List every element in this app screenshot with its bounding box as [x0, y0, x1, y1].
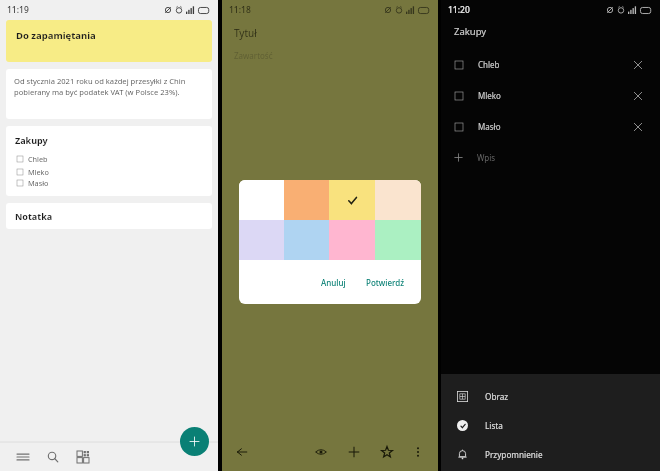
button[interactable]: Back [231, 441, 253, 463]
staticText: Masło [28, 178, 49, 188]
staticText: Chleb [478, 59, 500, 70]
staticText: Zakupy [15, 134, 48, 146]
staticText: Zawartość [234, 50, 273, 61]
staticText: Do zapamiętania [16, 29, 96, 42]
staticText: Lista [485, 420, 503, 431]
button[interactable]: Add [343, 441, 365, 463]
button[interactable]: Wpis [441, 142, 660, 173]
button[interactable]: Add [180, 427, 209, 456]
staticText: Masło [478, 121, 501, 132]
button[interactable]: Menu [12, 446, 34, 468]
button[interactable]: Search [42, 446, 64, 468]
button[interactable]: Lista [441, 411, 660, 440]
button[interactable]: Grid view [72, 446, 94, 468]
staticText: Zakupy [454, 25, 487, 38]
staticText: 11:18 [229, 4, 251, 16]
button[interactable]: Przypomnienie [441, 440, 660, 469]
button[interactable]: Remove Masło [630, 119, 646, 135]
staticText: Mleko [28, 167, 49, 177]
staticText: Notatka [15, 210, 53, 222]
button[interactable]: Remove Chleb [630, 57, 646, 73]
button[interactable]: More options [407, 441, 429, 463]
staticText: Mleko [478, 90, 501, 101]
staticText: Wpis [477, 152, 496, 163]
staticText: 11:19 [7, 4, 29, 16]
staticText: Od stycznia 2021 roku od każdej przesyłk… [14, 76, 204, 97]
button[interactable]: Do zapamiętania [6, 20, 212, 62]
button[interactable]: Colour 3 [329, 180, 375, 220]
staticText: Przypomnienie [485, 449, 543, 460]
button[interactable]: Anuluj [315, 273, 352, 292]
staticText: Obraz [485, 391, 509, 402]
button[interactable]: Remove Mleko [630, 88, 646, 104]
button[interactable]: Masło [441, 111, 660, 142]
button[interactable]: Potwierdź [360, 273, 411, 292]
button[interactable]: Favourite [376, 441, 398, 463]
staticText: Potwierdź [366, 277, 405, 288]
button[interactable]: Chleb [441, 49, 660, 80]
button[interactable]: Mleko [441, 80, 660, 111]
staticText: Tytuł [234, 26, 257, 40]
staticText: Chleb [28, 154, 48, 164]
button[interactable]: Obraz [441, 382, 660, 411]
button[interactable]: Od stycznia 2021 roku od każdej przesyłk… [6, 69, 212, 119]
button[interactable]: Notatka [6, 203, 212, 229]
button[interactable]: Zakupy [6, 126, 212, 196]
button[interactable]: Colour 1 [239, 180, 284, 220]
button[interactable]: Colour 4 [375, 180, 421, 220]
staticText: Anuluj [321, 277, 346, 288]
staticText: 11:20 [448, 4, 470, 16]
button[interactable]: Preview [310, 441, 332, 463]
